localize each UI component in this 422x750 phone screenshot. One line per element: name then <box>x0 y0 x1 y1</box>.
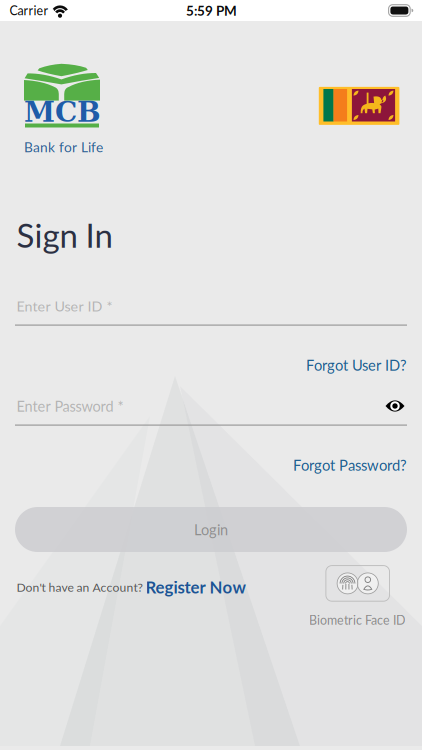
staticText: Bank for Life <box>24 139 103 155</box>
staticText: 5:59 PM <box>186 2 237 19</box>
staticText: Carrier <box>9 3 48 18</box>
staticText: Login <box>194 521 228 538</box>
staticText: Enter Password * <box>17 397 124 415</box>
button[interactable]: Forgot Password? <box>17 456 407 474</box>
staticText: Enter User ID * <box>17 297 113 314</box>
staticText: Don't have an Account? <box>16 580 142 594</box>
button[interactable]: Biometric Face ID login <box>326 566 389 601</box>
staticText: Forgot Password? <box>293 456 407 474</box>
button[interactable]: Don't have an Account? <box>16 578 268 596</box>
staticText: Sign In <box>17 215 113 255</box>
staticText: MCB <box>24 96 101 128</box>
button[interactable]: Login <box>15 507 407 552</box>
staticText: Register Now <box>145 577 245 597</box>
button[interactable]: Forgot User ID? <box>17 356 407 374</box>
staticText: Biometric Face ID <box>309 613 405 627</box>
staticText: Forgot User ID? <box>306 356 407 374</box>
button[interactable]: Show password <box>385 398 405 414</box>
